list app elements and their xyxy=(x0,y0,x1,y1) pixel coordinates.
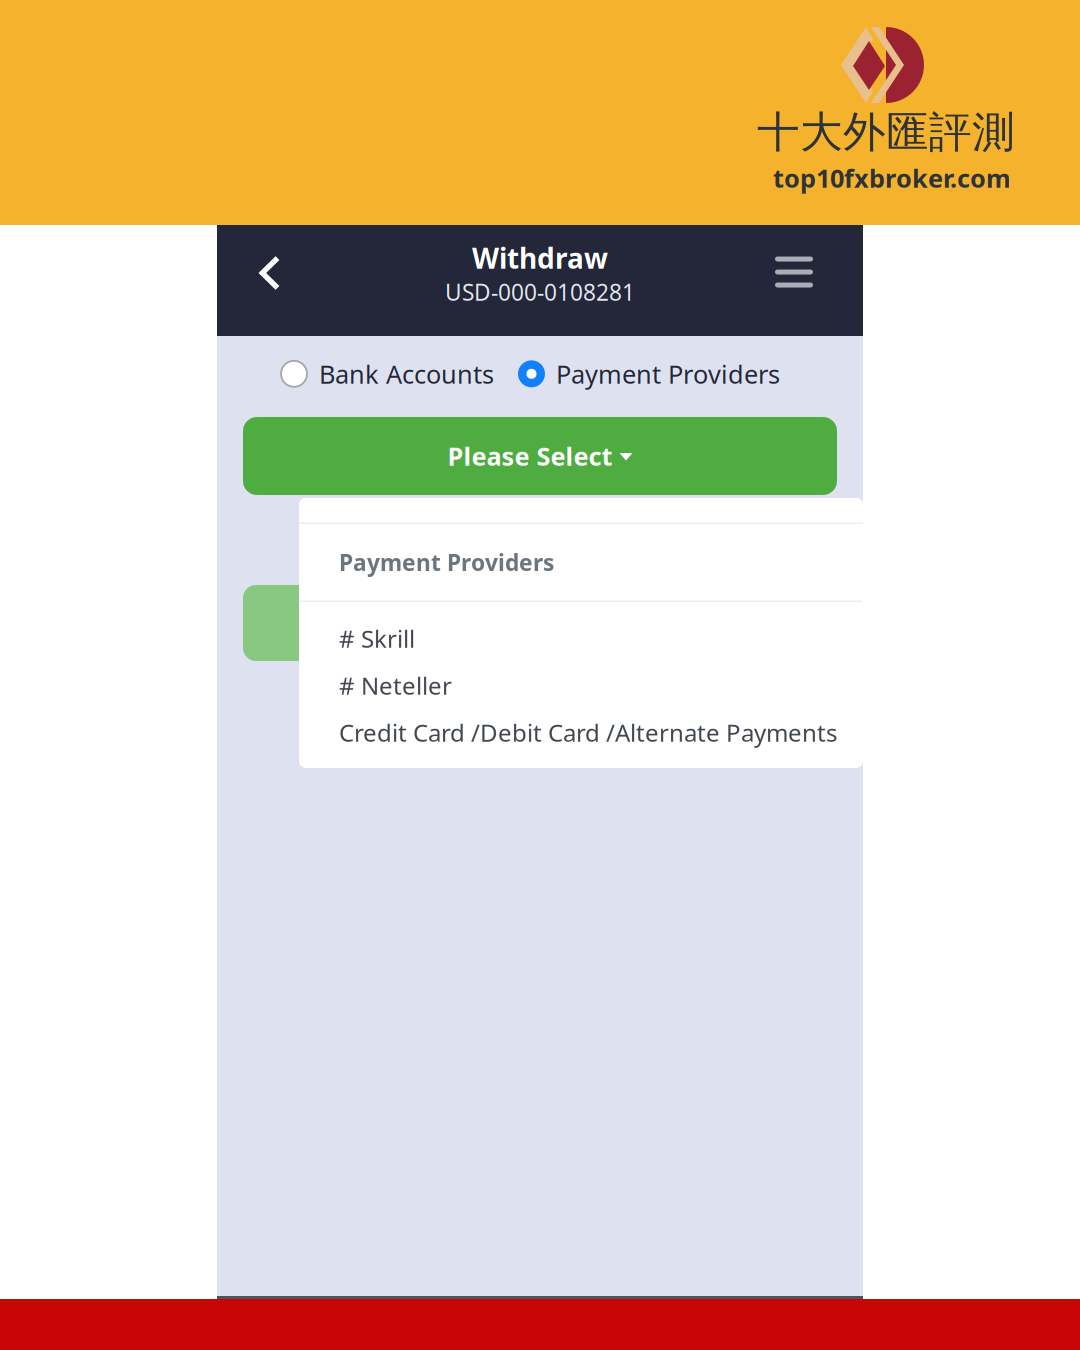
button[interactable]: Credit Card /Debit Card /Alternate Payme… xyxy=(299,709,863,756)
button[interactable]: Menu xyxy=(763,241,825,303)
button[interactable]: Submit xyxy=(243,585,493,661)
staticText: top10fxbroker.com xyxy=(773,161,1011,195)
button[interactable]: # Skrill xyxy=(299,615,863,662)
staticText: # Skrill xyxy=(339,623,415,654)
button[interactable]: Please Select xyxy=(243,417,837,495)
button[interactable]: Bank Accounts xyxy=(281,348,494,400)
staticText: Payment Providers xyxy=(339,547,554,577)
button[interactable]: Back xyxy=(239,242,301,304)
staticText: Bank Accounts xyxy=(319,357,494,391)
staticText: Withdraw xyxy=(472,239,608,277)
staticText: Please Select xyxy=(447,439,612,473)
staticText: # Neteller xyxy=(339,670,452,701)
staticText: USD-000-0108281 xyxy=(445,277,635,307)
staticText: 十大外匯評測 xyxy=(757,106,1015,158)
staticText: Payment Providers xyxy=(556,357,780,391)
button[interactable]: Payment Providers xyxy=(518,348,780,400)
staticText: Credit Card /Debit Card /Alternate Payme… xyxy=(339,717,837,748)
button[interactable]: # Neteller xyxy=(299,662,863,709)
